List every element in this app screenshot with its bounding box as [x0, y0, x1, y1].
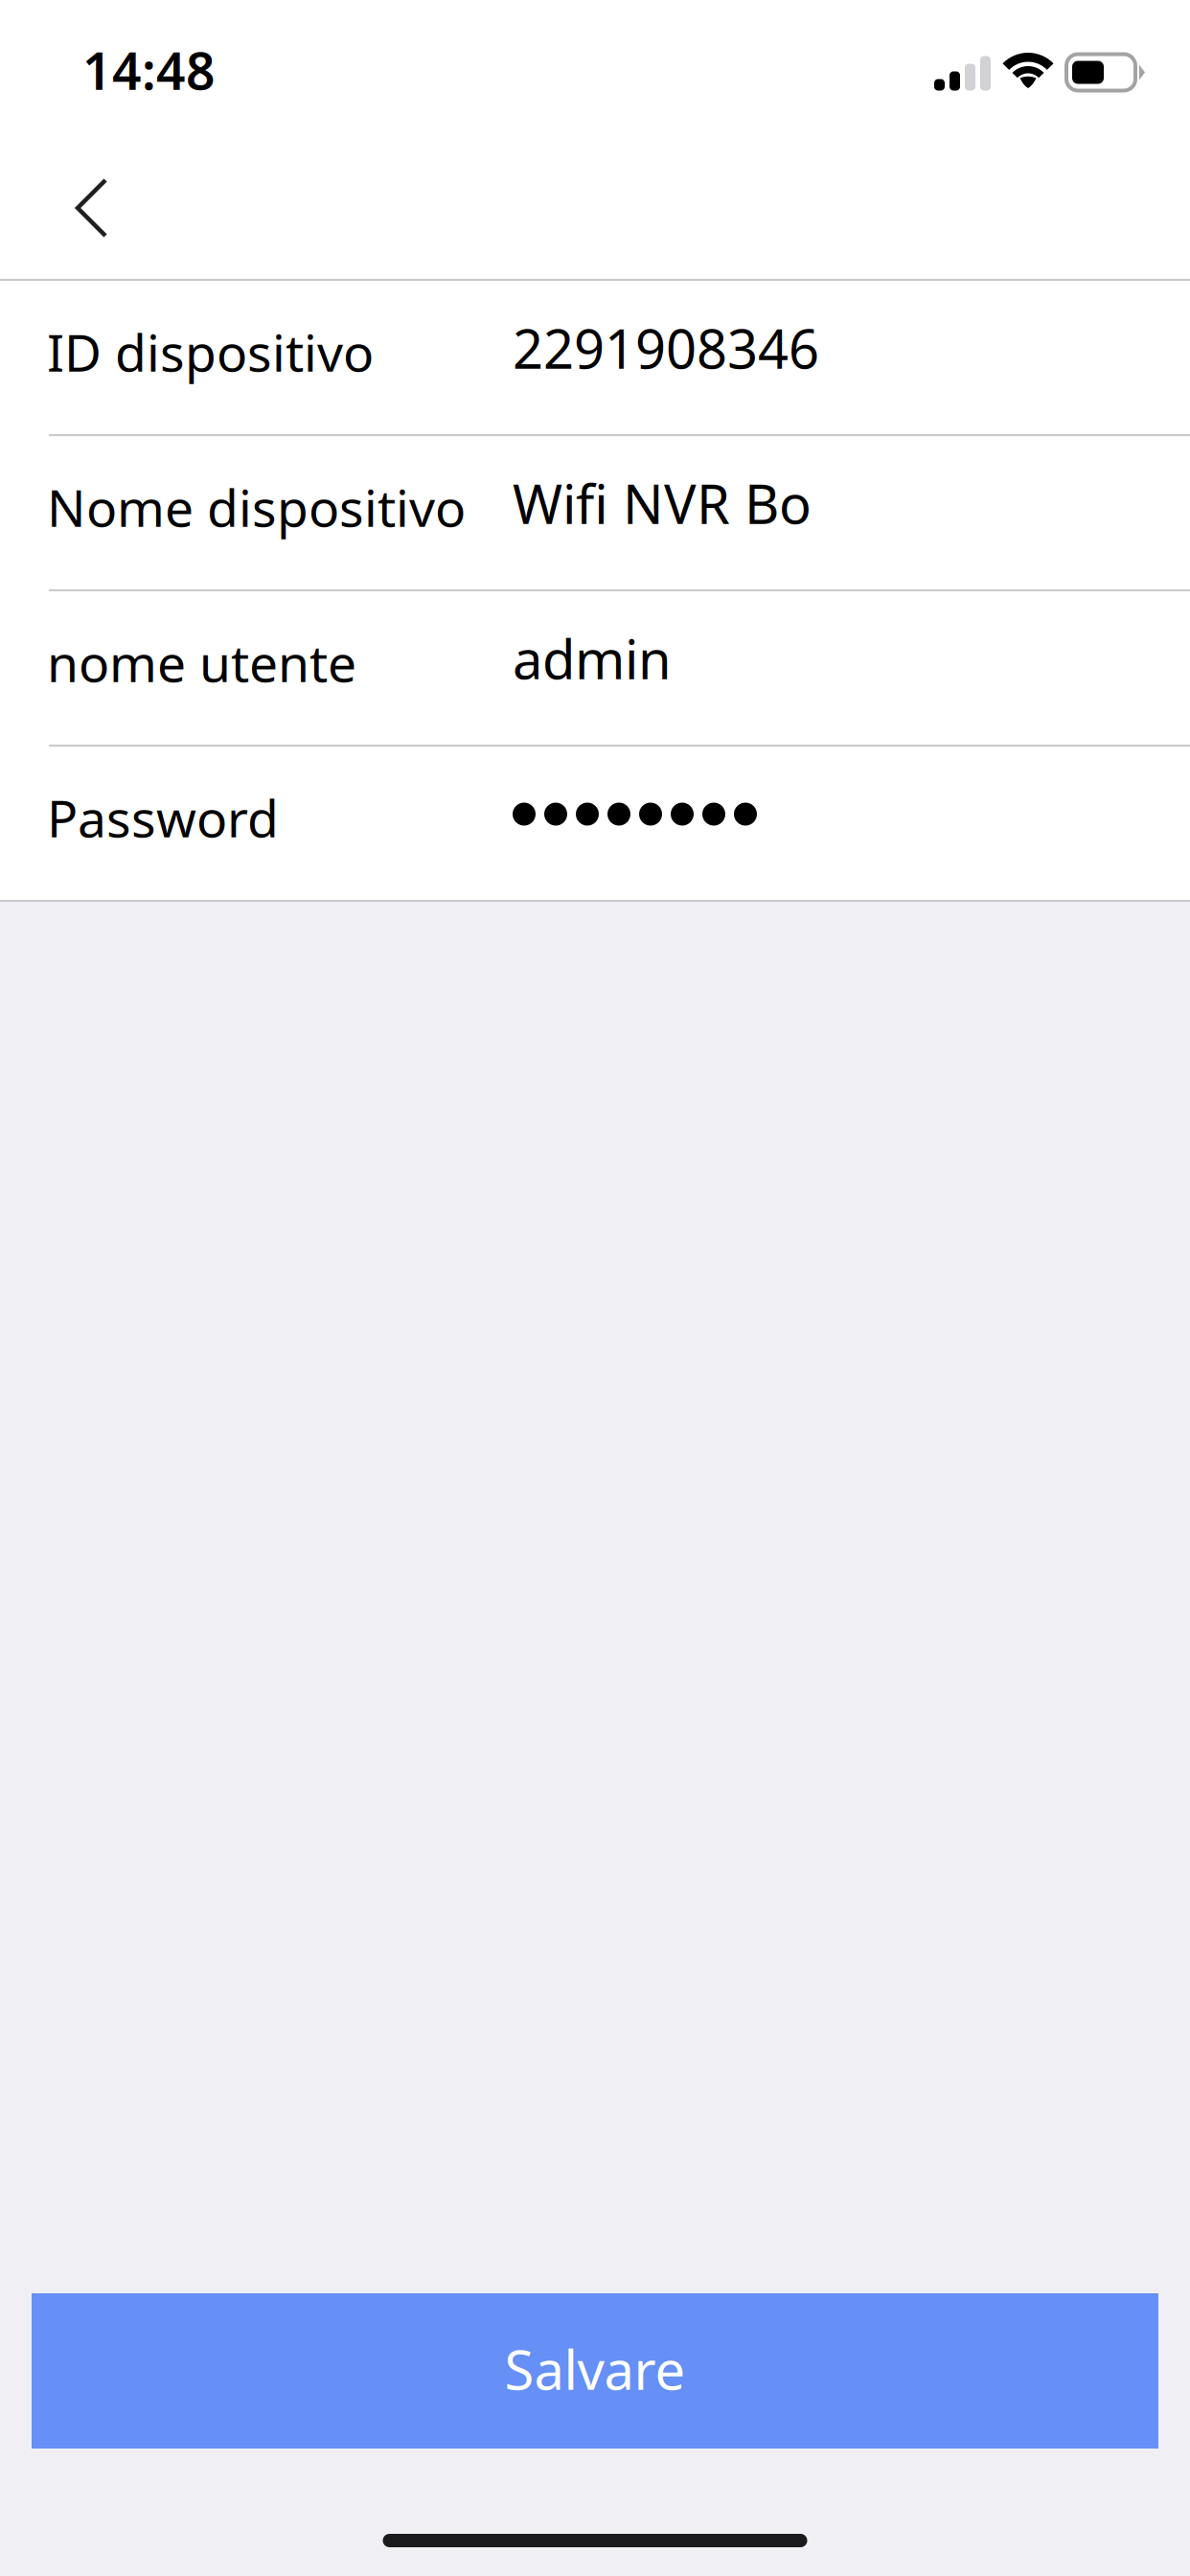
button[interactable]: Password [0, 747, 1190, 902]
staticText: ID dispositivo [47, 318, 374, 386]
staticText: 2291908346 [513, 312, 819, 384]
staticText: Wifi NVR Bo [513, 467, 812, 539]
staticText: 14:48 [82, 36, 216, 104]
button[interactable]: ID dispositivo [0, 281, 1190, 436]
button[interactable]: Nome dispositivo [0, 436, 1190, 591]
staticText: nome utente [47, 628, 356, 696]
button[interactable]: Salvare [32, 2293, 1158, 2449]
staticText: admin [513, 623, 672, 694]
button[interactable]: nome utente [0, 591, 1190, 747]
staticText: Nome dispositivo [47, 473, 466, 541]
button[interactable]: Back [0, 126, 182, 279]
staticText: Password [47, 784, 279, 851]
staticText: Salvare [504, 2333, 686, 2405]
